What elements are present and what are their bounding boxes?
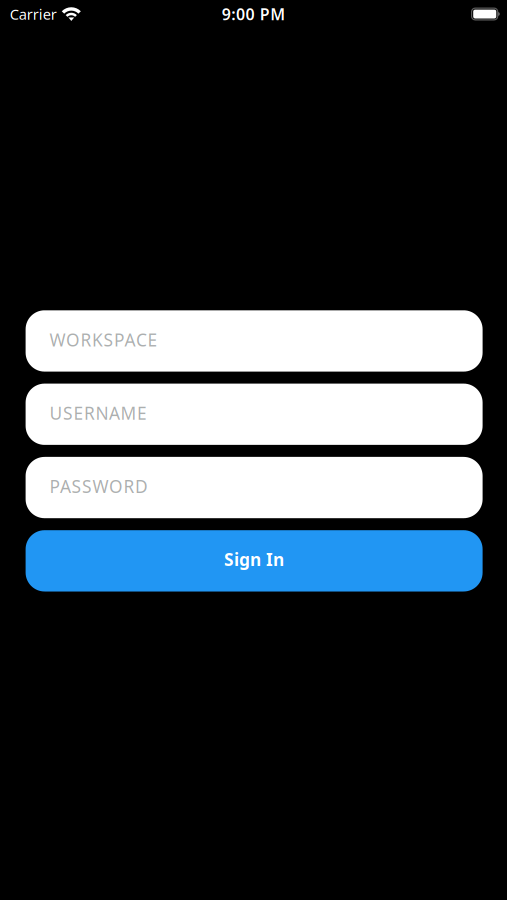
button[interactable]: USERNAME [26, 384, 483, 445]
button[interactable]: WORKSPACE [26, 310, 483, 372]
button[interactable]: Sign In [26, 530, 483, 591]
button[interactable]: PASSWORD [26, 457, 483, 518]
staticText: Carrier [10, 4, 57, 24]
staticText: WORKSPACE [50, 328, 158, 351]
staticText: USERNAME [50, 401, 147, 424]
staticText: Sign In [224, 548, 284, 571]
staticText: PASSWORD [50, 475, 148, 498]
staticText: 9:00 PM [222, 3, 285, 25]
